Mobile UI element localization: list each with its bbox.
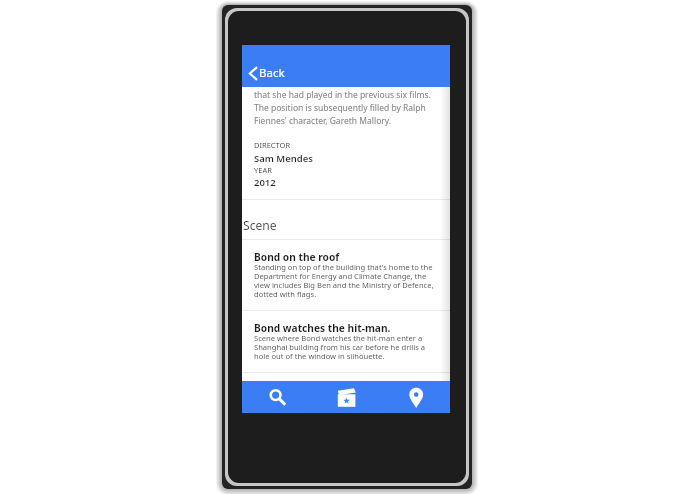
- button[interactable]: Back: [246, 63, 287, 83]
- staticText: Scene where Bond watches the hit-man ent…: [254, 334, 436, 361]
- staticText: YEAR: [254, 165, 272, 175]
- staticText: Sam Mendes: [254, 152, 314, 165]
- button[interactable]: Search: [242, 381, 312, 413]
- staticText: Bond watches the hit-man.: [254, 323, 391, 334]
- button[interactable]: Bond on the roof: [242, 240, 450, 310]
- button[interactable]: Movies: [312, 381, 381, 413]
- staticText: Back: [259, 65, 285, 81]
- staticText: 2012: [254, 176, 276, 189]
- staticText: DIRECTOR: [254, 140, 291, 150]
- staticText: Bond on the roof: [254, 252, 340, 263]
- button[interactable]: Map: [381, 381, 450, 413]
- staticText: Scene: [243, 217, 277, 233]
- staticText: that she had played in the previous six …: [254, 88, 442, 127]
- staticText: Standing on top of the building that's h…: [254, 263, 436, 299]
- button[interactable]: Bond watches the hit-man.: [242, 311, 450, 372]
